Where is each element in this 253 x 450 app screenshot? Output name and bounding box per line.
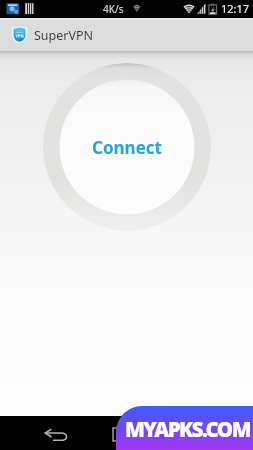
button[interactable]: Back — [43, 421, 70, 448]
staticText: 4K/s — [103, 2, 124, 16]
staticText: MYAPKS.COM — [125, 415, 250, 443]
staticText: 12:17 — [221, 1, 250, 16]
button[interactable]: Connect — [43, 63, 211, 231]
button[interactable]: Home — [107, 422, 132, 447]
staticText: SuperVPN — [34, 27, 94, 44]
staticText: Connect — [92, 136, 162, 159]
